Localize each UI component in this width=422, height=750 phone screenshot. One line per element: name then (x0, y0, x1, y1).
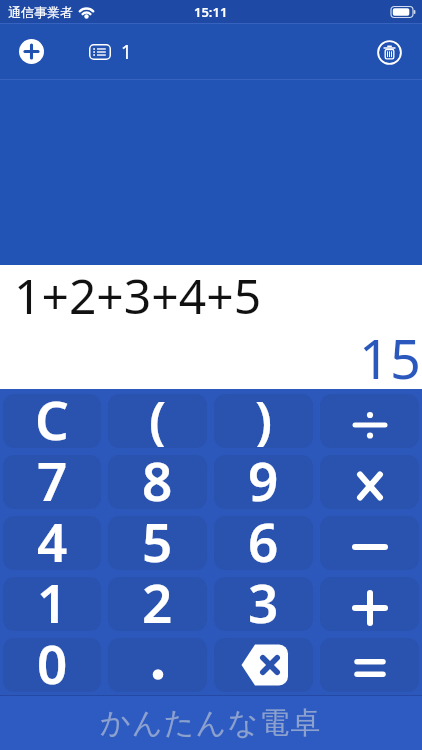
button[interactable] (376, 39, 402, 65)
button[interactable]: 8 (108, 455, 207, 509)
button[interactable] (89, 44, 111, 60)
button[interactable]: 5 (108, 516, 207, 570)
button[interactable]: 3 (214, 577, 313, 631)
button[interactable] (108, 638, 207, 692)
button[interactable] (214, 638, 313, 692)
button[interactable]: 7 (3, 455, 101, 509)
button[interactable]: 6 (214, 516, 313, 570)
button[interactable]: 1 (3, 577, 101, 631)
staticText: 1+2+3+4+5 (14, 263, 262, 328)
button[interactable] (320, 455, 419, 509)
staticText: 7 (37, 455, 68, 508)
staticText: かんたんな電卓 (100, 704, 322, 742)
button[interactable]: ( (108, 394, 207, 448)
button[interactable]: C (3, 394, 101, 448)
button[interactable]: 9 (214, 455, 313, 509)
staticText: 15 (359, 321, 421, 395)
staticText: 0 (37, 638, 68, 691)
staticText: ( (149, 394, 167, 447)
staticText: 9 (248, 455, 279, 508)
staticText: C (35, 394, 69, 447)
staticText: 15:11 (194, 3, 228, 21)
button[interactable]: 2 (108, 577, 207, 631)
staticText: 2 (142, 577, 173, 630)
button[interactable]: ) (214, 394, 313, 448)
button[interactable]: 0 (3, 638, 101, 692)
button[interactable]: 4 (3, 516, 101, 570)
staticText: 4 (37, 516, 68, 569)
staticText: 8 (142, 455, 173, 508)
button[interactable] (320, 394, 419, 448)
staticText: ) (255, 394, 273, 447)
staticText: 3 (248, 577, 279, 630)
staticText: 通信事業者 (8, 4, 73, 20)
staticText: 6 (248, 516, 279, 569)
button[interactable] (19, 39, 44, 64)
staticText: 1 (37, 577, 68, 630)
staticText: 5 (142, 516, 173, 569)
button[interactable] (320, 577, 419, 631)
button[interactable] (320, 638, 419, 692)
staticText: 1 (121, 39, 132, 65)
button[interactable] (320, 516, 419, 570)
